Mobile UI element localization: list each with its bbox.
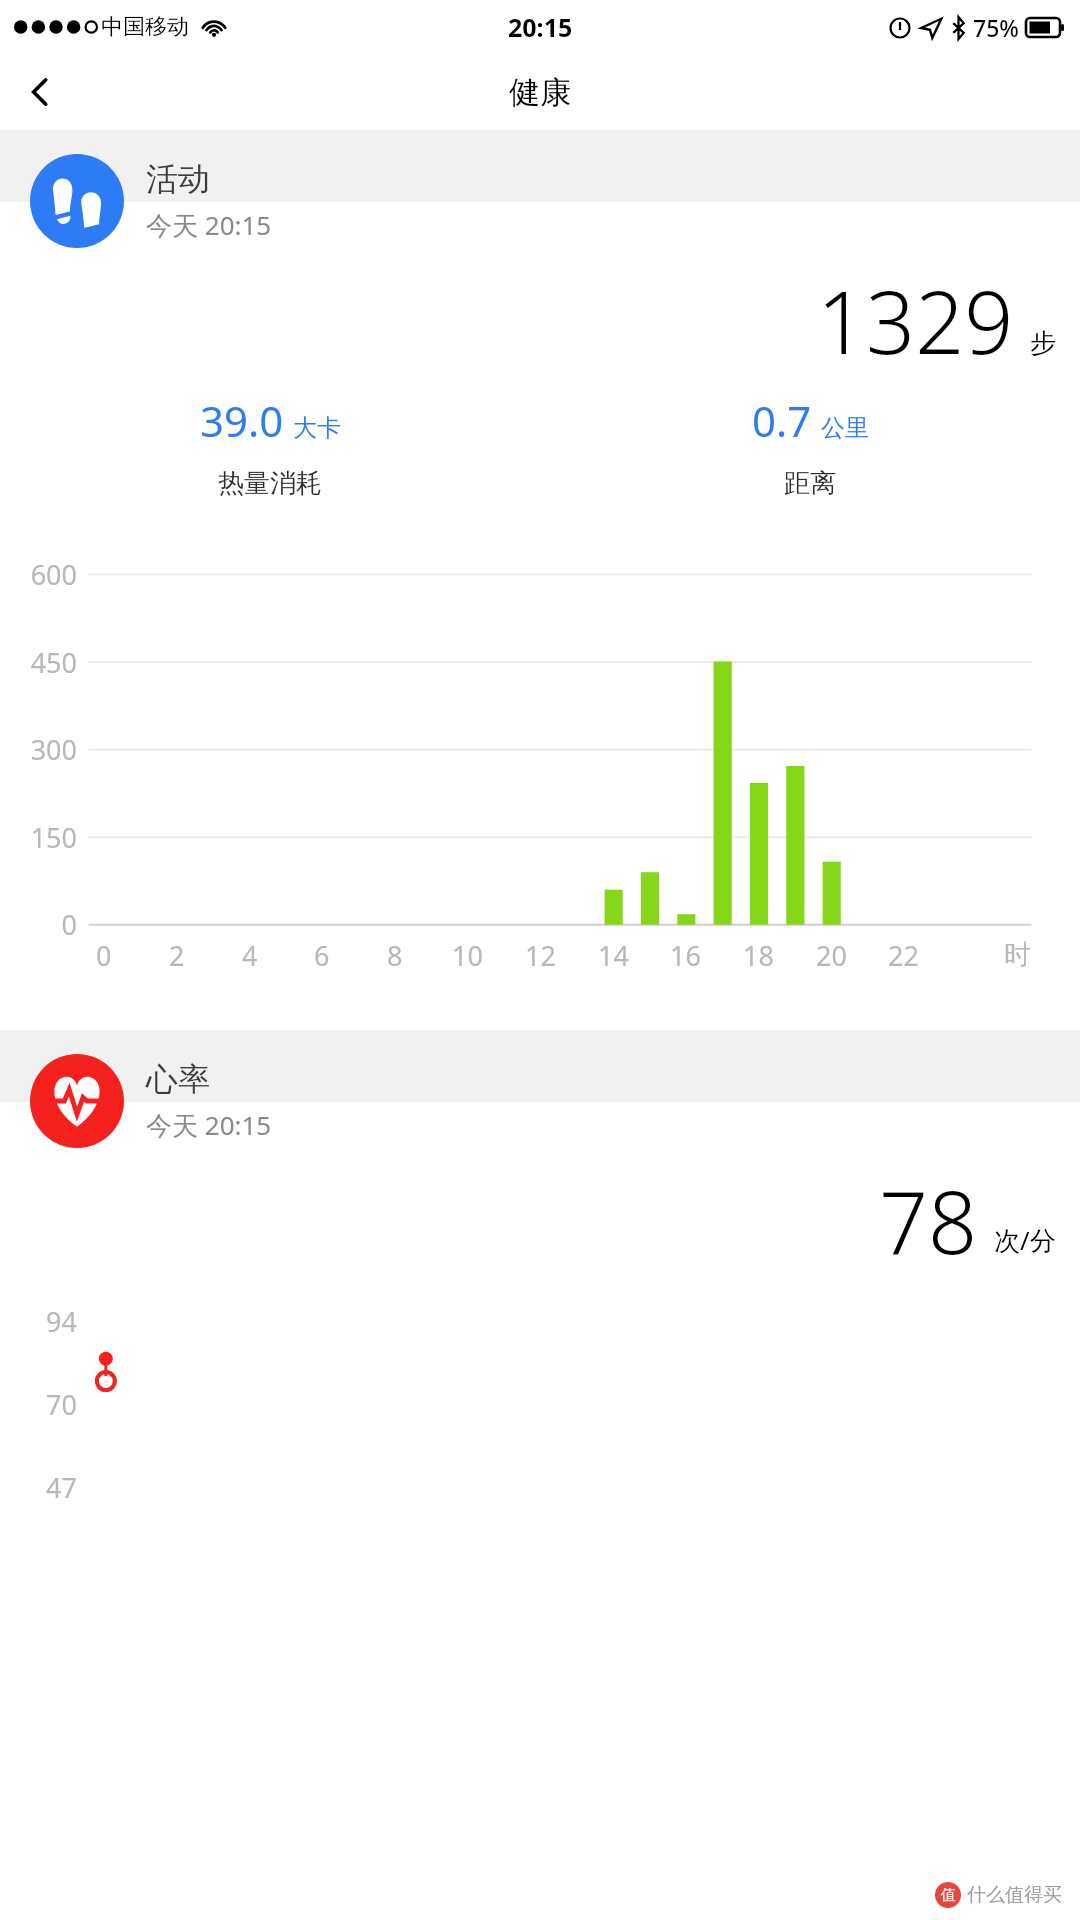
staticText: 20:15 xyxy=(508,10,573,44)
staticText: 0 xyxy=(61,906,77,943)
staticText: 47 xyxy=(46,1469,77,1506)
staticText: 次/分 xyxy=(994,1222,1056,1258)
staticText: 1329 xyxy=(817,262,1014,372)
staticText: 2 xyxy=(169,937,185,974)
staticText: 今天 20:15 xyxy=(146,1107,272,1143)
staticText: 16 xyxy=(670,937,701,974)
staticText: 6 xyxy=(314,937,330,974)
staticText: 健康 xyxy=(509,73,571,112)
button[interactable]: 心率 xyxy=(0,1030,1080,1162)
button[interactable]: 39.0 xyxy=(0,392,540,500)
staticText: 75% xyxy=(973,12,1019,43)
staticText: 热量消耗 xyxy=(218,467,322,500)
button[interactable]: 0.7 xyxy=(540,392,1080,500)
staticText: 78 xyxy=(879,1162,978,1270)
staticText: 20 xyxy=(816,937,847,974)
staticText: 公里 xyxy=(821,413,869,443)
staticText: 什么值得买 xyxy=(967,1883,1062,1907)
staticText: 0.7 xyxy=(752,392,812,449)
staticText: 距离 xyxy=(784,467,836,500)
staticText: 8 xyxy=(387,937,403,974)
staticText: 300 xyxy=(30,731,77,768)
staticText: 心率 xyxy=(146,1059,210,1099)
staticText: 步 xyxy=(1030,327,1056,360)
staticText: 值 xyxy=(941,1886,956,1905)
staticText: 12 xyxy=(525,937,556,974)
staticText: 94 xyxy=(46,1303,77,1340)
staticText: 时 xyxy=(1004,938,1031,972)
staticText: 中国移动 xyxy=(101,13,189,41)
staticText: 活动 xyxy=(146,159,210,199)
staticText: 4 xyxy=(242,937,258,974)
staticText: 大卡 xyxy=(293,413,341,443)
staticText: 今天 20:15 xyxy=(146,207,272,243)
staticText: 39.0 xyxy=(200,392,284,449)
staticText: 10 xyxy=(452,937,483,974)
staticText: 150 xyxy=(30,819,77,856)
staticText: 14 xyxy=(598,937,629,974)
staticText: 22 xyxy=(888,937,919,974)
staticText: 70 xyxy=(46,1386,77,1423)
button[interactable]: 活动 xyxy=(0,130,1080,262)
staticText: 600 xyxy=(30,556,77,593)
button[interactable]: Back xyxy=(8,60,72,124)
staticText: 18 xyxy=(743,937,774,974)
staticText: 450 xyxy=(30,644,77,681)
staticText: 0 xyxy=(96,937,112,974)
